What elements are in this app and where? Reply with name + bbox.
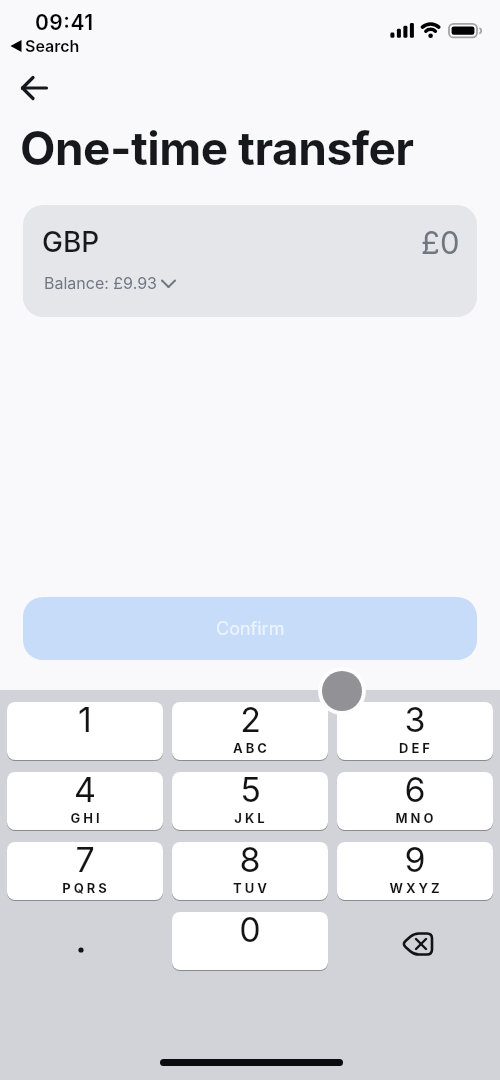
button[interactable]: Confirm: [23, 597, 477, 660]
staticText: 1: [78, 702, 92, 740]
button[interactable]: 4: [7, 772, 163, 830]
staticText: TUV: [233, 880, 270, 896]
staticText: Balance: £9.93: [44, 273, 157, 292]
button[interactable]: 8: [172, 842, 328, 900]
button[interactable]: [7, 912, 163, 970]
button[interactable]: 0: [172, 912, 328, 970]
button[interactable]: GBP: [23, 205, 477, 317]
staticText: MNO: [395, 810, 437, 826]
staticText: 09:41: [35, 10, 94, 35]
button[interactable]: 2: [172, 702, 328, 760]
staticText: 6: [404, 772, 426, 810]
button[interactable]: 3: [337, 702, 493, 760]
button[interactable]: 1: [7, 702, 163, 760]
staticText: ABC: [233, 740, 270, 756]
staticText: DEF: [399, 740, 433, 756]
staticText: JKL: [234, 810, 268, 826]
button[interactable]: 6: [337, 772, 493, 830]
button[interactable]: 9: [337, 842, 493, 900]
button[interactable]: 5: [172, 772, 328, 830]
staticText: Confirm: [216, 618, 285, 640]
staticText: 3: [404, 702, 426, 740]
staticText: £0: [421, 224, 460, 262]
staticText: WXYZ: [389, 880, 443, 896]
staticText: 8: [239, 842, 261, 880]
button[interactable]: [12, 66, 56, 106]
staticText: 4: [74, 772, 96, 810]
staticText: GHI: [70, 810, 103, 826]
button[interactable]: 7: [7, 842, 163, 900]
staticText: GBP: [42, 225, 100, 259]
staticText: 0: [239, 912, 261, 950]
staticText: 9: [404, 842, 426, 880]
staticText: One-time transfer: [20, 120, 414, 176]
staticText: 7: [75, 842, 95, 880]
staticText: Search: [25, 36, 80, 55]
staticText: 5: [240, 772, 261, 810]
staticText: PQRS: [62, 880, 110, 896]
button[interactable]: [337, 912, 493, 970]
staticText: 2: [240, 702, 261, 740]
